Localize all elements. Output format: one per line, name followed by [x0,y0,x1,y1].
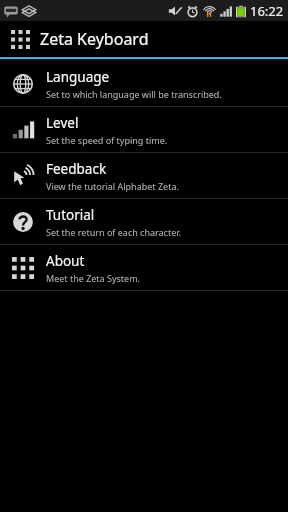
staticText: Set to which language will be transcribe… [46,88,222,100]
other: App icon [11,30,30,49]
button[interactable]: About [0,245,288,290]
staticText: Set the speed of typing time. [46,134,168,146]
staticText: 16:22 [250,2,284,20]
staticText: Tutorial [46,206,95,224]
staticText: About [46,252,85,270]
button[interactable]: Tutorial [0,199,288,244]
staticText: Level [46,114,79,132]
staticText: Zeta Keyboard [40,28,149,50]
staticText: View the tutorial Alphabet Zeta. [46,180,179,192]
button[interactable]: App icon [0,21,288,57]
staticText: Language [46,68,110,86]
staticText: Meet the Zeta System. [46,272,140,284]
button[interactable]: Feedback [0,153,288,198]
button[interactable]: Language [0,61,288,106]
staticText: Set the return of each character. [46,226,181,238]
button[interactable]: Level [0,107,288,152]
staticText: Feedback [46,160,107,178]
